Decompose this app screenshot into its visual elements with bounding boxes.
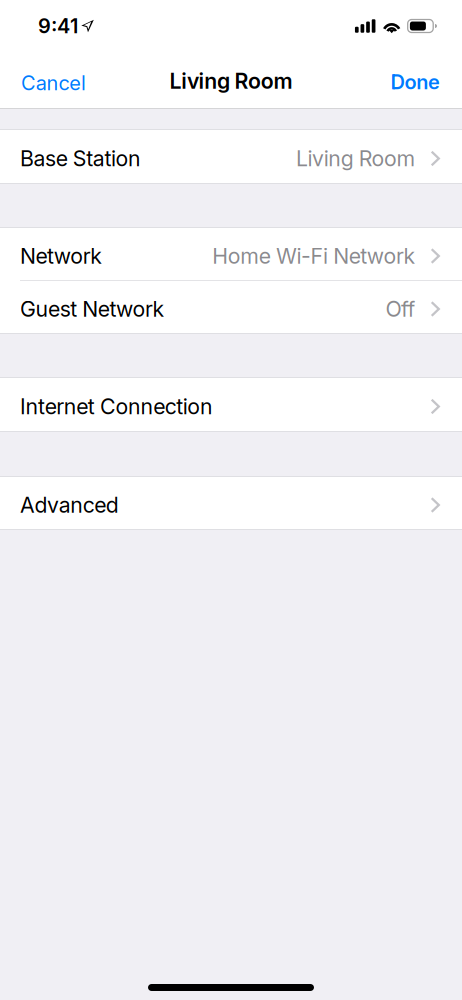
button[interactable]: Network [0, 228, 462, 280]
button[interactable]: Cancel [0, 58, 98, 108]
button[interactable]: Done [379, 58, 462, 108]
button[interactable]: Internet Connection [0, 378, 462, 431]
staticText: Home Wi-Fi Network [212, 243, 415, 269]
staticText: Advanced [20, 492, 119, 518]
staticText: Living Room [169, 68, 292, 94]
staticText: Cancel [21, 71, 86, 95]
staticText: Base Station [20, 146, 141, 171]
staticText: Off [385, 296, 415, 322]
button[interactable]: Base Station [0, 130, 462, 183]
staticText: 9:41 [38, 14, 78, 38]
staticText: Guest Network [20, 296, 165, 322]
button[interactable]: Advanced [0, 477, 462, 529]
button[interactable]: Guest Network [0, 281, 462, 333]
staticText: Internet Connection [20, 394, 213, 419]
staticText: Living Room [296, 146, 415, 171]
staticText: Done [391, 70, 440, 94]
staticText: Network [20, 243, 102, 269]
